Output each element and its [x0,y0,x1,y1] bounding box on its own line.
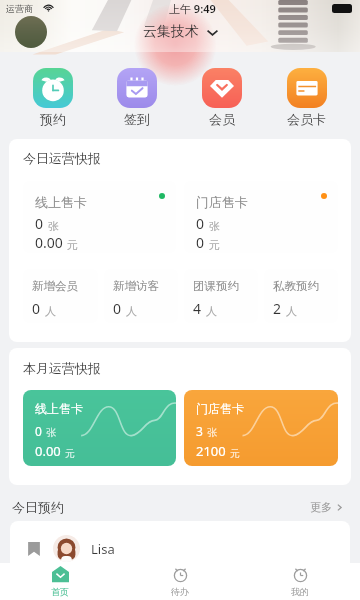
button[interactable]: 会员卡 [264,68,349,127]
button[interactable]: 会员 [179,68,264,127]
staticText: 本月运营快报 [23,360,101,376]
staticText: 新增访客 [113,279,159,293]
staticText: 首页 [51,586,69,597]
staticText: 会员卡 [287,111,326,127]
staticText: 0.00 [35,233,63,252]
staticText: 新增会员 [32,279,78,293]
staticText: 张 [209,219,220,233]
staticText: 人 [206,304,217,318]
staticText: 待办 [171,586,189,597]
staticText: 预约 [40,111,66,127]
staticText: 0 [196,214,205,233]
staticText: Lisa [91,540,115,558]
staticText: 更多 [310,500,332,514]
staticText: 0.00 [35,442,61,460]
staticText: 人 [45,304,56,318]
staticText: 运营商 [6,3,33,14]
button[interactable]: 签到 [95,68,179,127]
staticText: 上午 9:49 [169,1,216,16]
staticText: 张 [46,426,56,439]
staticText: 元 [67,238,78,252]
button[interactable]: 线上售卡 [23,390,176,466]
button[interactable]: 门店售卡 [184,390,338,466]
staticText: 人 [286,304,297,318]
button[interactable]: 待办 [120,563,240,600]
button[interactable]: 新增会员 [23,269,98,323]
staticText: 门店售卡 [196,194,248,210]
button[interactable]: Profile [15,16,47,48]
button[interactable]: 门店售卡 [184,181,338,253]
staticText: 签到 [124,111,150,127]
staticText: 张 [207,426,217,439]
staticText: 会员 [209,111,235,127]
staticText: 今日预约 [12,499,64,515]
button[interactable]: 团课预约 [184,269,258,323]
staticText: 线上售卡 [35,194,87,210]
staticText: 0 [113,299,122,318]
staticText: 3 [196,423,203,439]
staticText: 0 [35,214,44,233]
button[interactable]: 预约 [11,68,95,127]
staticText: 团课预约 [193,279,239,293]
staticText: 元 [209,238,220,252]
button[interactable]: 新增访客 [104,269,178,323]
button[interactable]: 私教预约 [264,269,338,323]
staticText: 0 [196,233,205,252]
staticText: 云集技术 [143,23,199,41]
staticText: 私教预约 [273,279,319,293]
staticText: 元 [65,447,75,460]
staticText: 2100 [196,442,226,460]
button[interactable]: Lisa [27,535,350,562]
button[interactable]: 云集技术 [143,23,219,41]
staticText: 人 [126,304,137,318]
staticText: 4 [193,299,202,318]
staticText: 今日运营快报 [23,150,101,166]
button[interactable]: 首页 [0,563,120,600]
staticText: 元 [230,447,240,460]
staticText: 0 [32,299,41,318]
staticText: 我的 [291,586,309,597]
staticText: 2 [273,299,282,318]
button[interactable]: 线上售卡 [23,181,176,253]
button[interactable]: 更多 [306,498,348,516]
staticText: 张 [48,219,59,233]
staticText: 线上售卡 [35,401,83,416]
staticText: 0 [35,423,42,439]
staticText: 门店售卡 [196,401,244,416]
button[interactable]: 我的 [240,563,360,600]
